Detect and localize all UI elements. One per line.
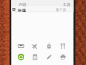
button[interactable]: File name [18,7,26,11]
staticText: 标题 [18,8,26,13]
staticText: 内容 [19,2,27,7]
button[interactable]: Package [30,52,41,63]
button[interactable]: Status [55,7,71,11]
button[interactable]: Tools [60,1,71,5]
button[interactable]: Android [16,52,27,63]
button[interactable]: Document title [18,1,28,5]
button[interactable]: Flights [30,41,41,52]
button[interactable]: Mail [16,41,27,52]
staticText: 第 1 页 [56,8,66,12]
button[interactable]: Restaurants [58,41,69,52]
button[interactable]: Printer [58,52,69,63]
button[interactable]: Menu [12,7,16,11]
button[interactable]: Edit [44,52,55,63]
button[interactable]: Bag [44,41,55,52]
staticText: 工具 [63,2,71,7]
